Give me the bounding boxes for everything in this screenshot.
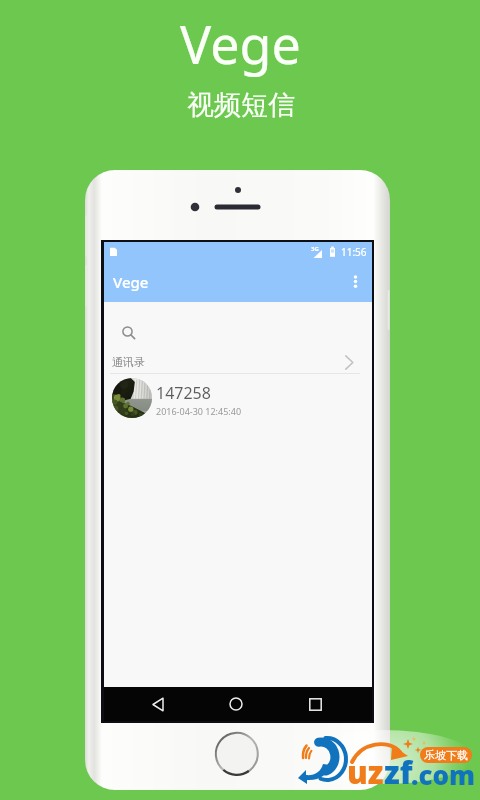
button[interactable]: Recents xyxy=(301,687,329,721)
staticText: 3G xyxy=(311,245,319,253)
button[interactable]: Search xyxy=(104,318,372,345)
staticText: uz xyxy=(347,751,384,793)
button[interactable]: More options xyxy=(338,262,372,302)
staticText: Vege xyxy=(180,8,301,79)
staticText: .com xyxy=(411,757,476,792)
staticText: 通讯录 xyxy=(112,355,145,369)
button[interactable]: 147258 xyxy=(104,374,372,422)
button[interactable]: 通讯录 xyxy=(104,345,372,374)
staticText: zf xyxy=(384,751,413,793)
staticText: 2016-04-30 12:45:40 xyxy=(156,405,242,417)
staticText: 147258 xyxy=(156,382,211,404)
staticText: 11:56 xyxy=(341,245,367,259)
staticText: 视频短信 xyxy=(187,88,295,122)
staticText: 乐坡下载 xyxy=(424,748,468,762)
button[interactable]: Back xyxy=(144,687,172,721)
button[interactable]: Home xyxy=(222,687,250,721)
staticText: Vege xyxy=(113,272,149,292)
